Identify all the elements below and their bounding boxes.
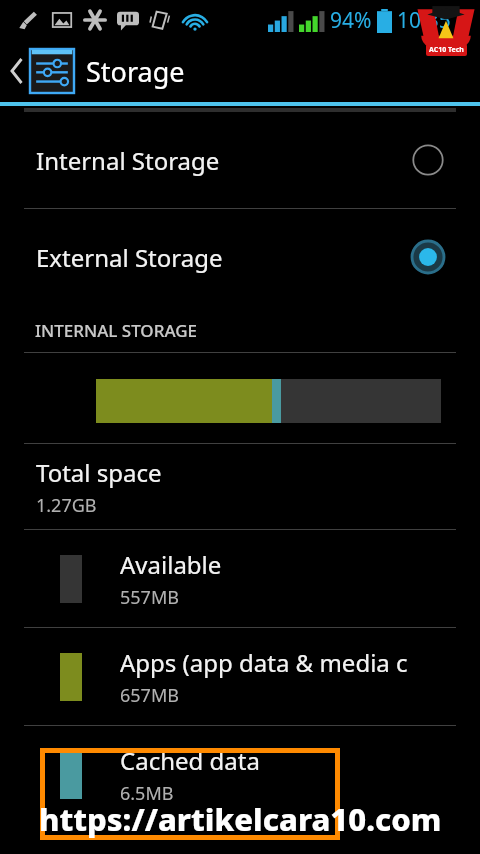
- staticText: 557MB: [120, 585, 179, 610]
- staticText: Internal Storage: [36, 144, 412, 177]
- button[interactable]: Total space: [0, 444, 480, 529]
- staticText: 6.5MB: [120, 781, 174, 806]
- button[interactable]: Available: [0, 530, 480, 627]
- button[interactable]: External Storage: [0, 209, 480, 305]
- staticText: 657MB: [120, 683, 179, 708]
- button[interactable]: Apps (app data & media c: [0, 628, 480, 725]
- staticText: Total space: [36, 456, 162, 489]
- staticText: AC10 Tech: [429, 45, 464, 55]
- staticText: INTERNAL STORAGE: [35, 319, 198, 342]
- staticText: External Storage: [36, 241, 412, 274]
- staticText: 94%: [330, 6, 372, 35]
- staticText: Cached data: [120, 744, 260, 777]
- staticText: Available: [120, 548, 222, 581]
- button[interactable]: Cached data: [0, 726, 480, 823]
- button[interactable]: Internal Storage: [0, 112, 480, 208]
- staticText: Apps (app data & media c: [120, 646, 408, 679]
- staticText: 1.27GB: [36, 493, 97, 518]
- staticText: 10:35: [397, 6, 451, 35]
- button[interactable]: Up, Storage: [0, 40, 480, 102]
- staticText: Storage: [86, 53, 185, 90]
- staticText: https://artikelcara10.com: [39, 798, 442, 840]
